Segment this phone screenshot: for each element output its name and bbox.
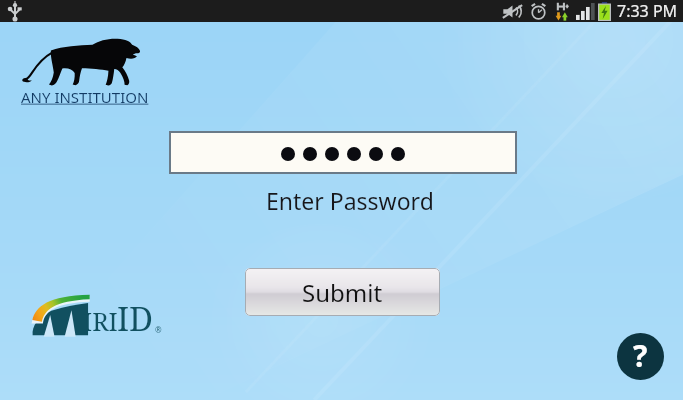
staticText: IRI bbox=[83, 304, 118, 338]
staticText: ID bbox=[117, 296, 154, 338]
staticText: 7:33 PM bbox=[617, 0, 678, 22]
staticText: Submit bbox=[302, 276, 383, 309]
staticText: ANY INSTITUTION bbox=[21, 87, 149, 107]
staticText: Enter Password bbox=[266, 185, 434, 216]
staticText: ? bbox=[633, 335, 648, 376]
button[interactable] bbox=[169, 131, 517, 174]
button[interactable]: Submit bbox=[245, 268, 440, 316]
button[interactable]: Help bbox=[617, 333, 664, 380]
staticText: ® bbox=[155, 324, 162, 335]
